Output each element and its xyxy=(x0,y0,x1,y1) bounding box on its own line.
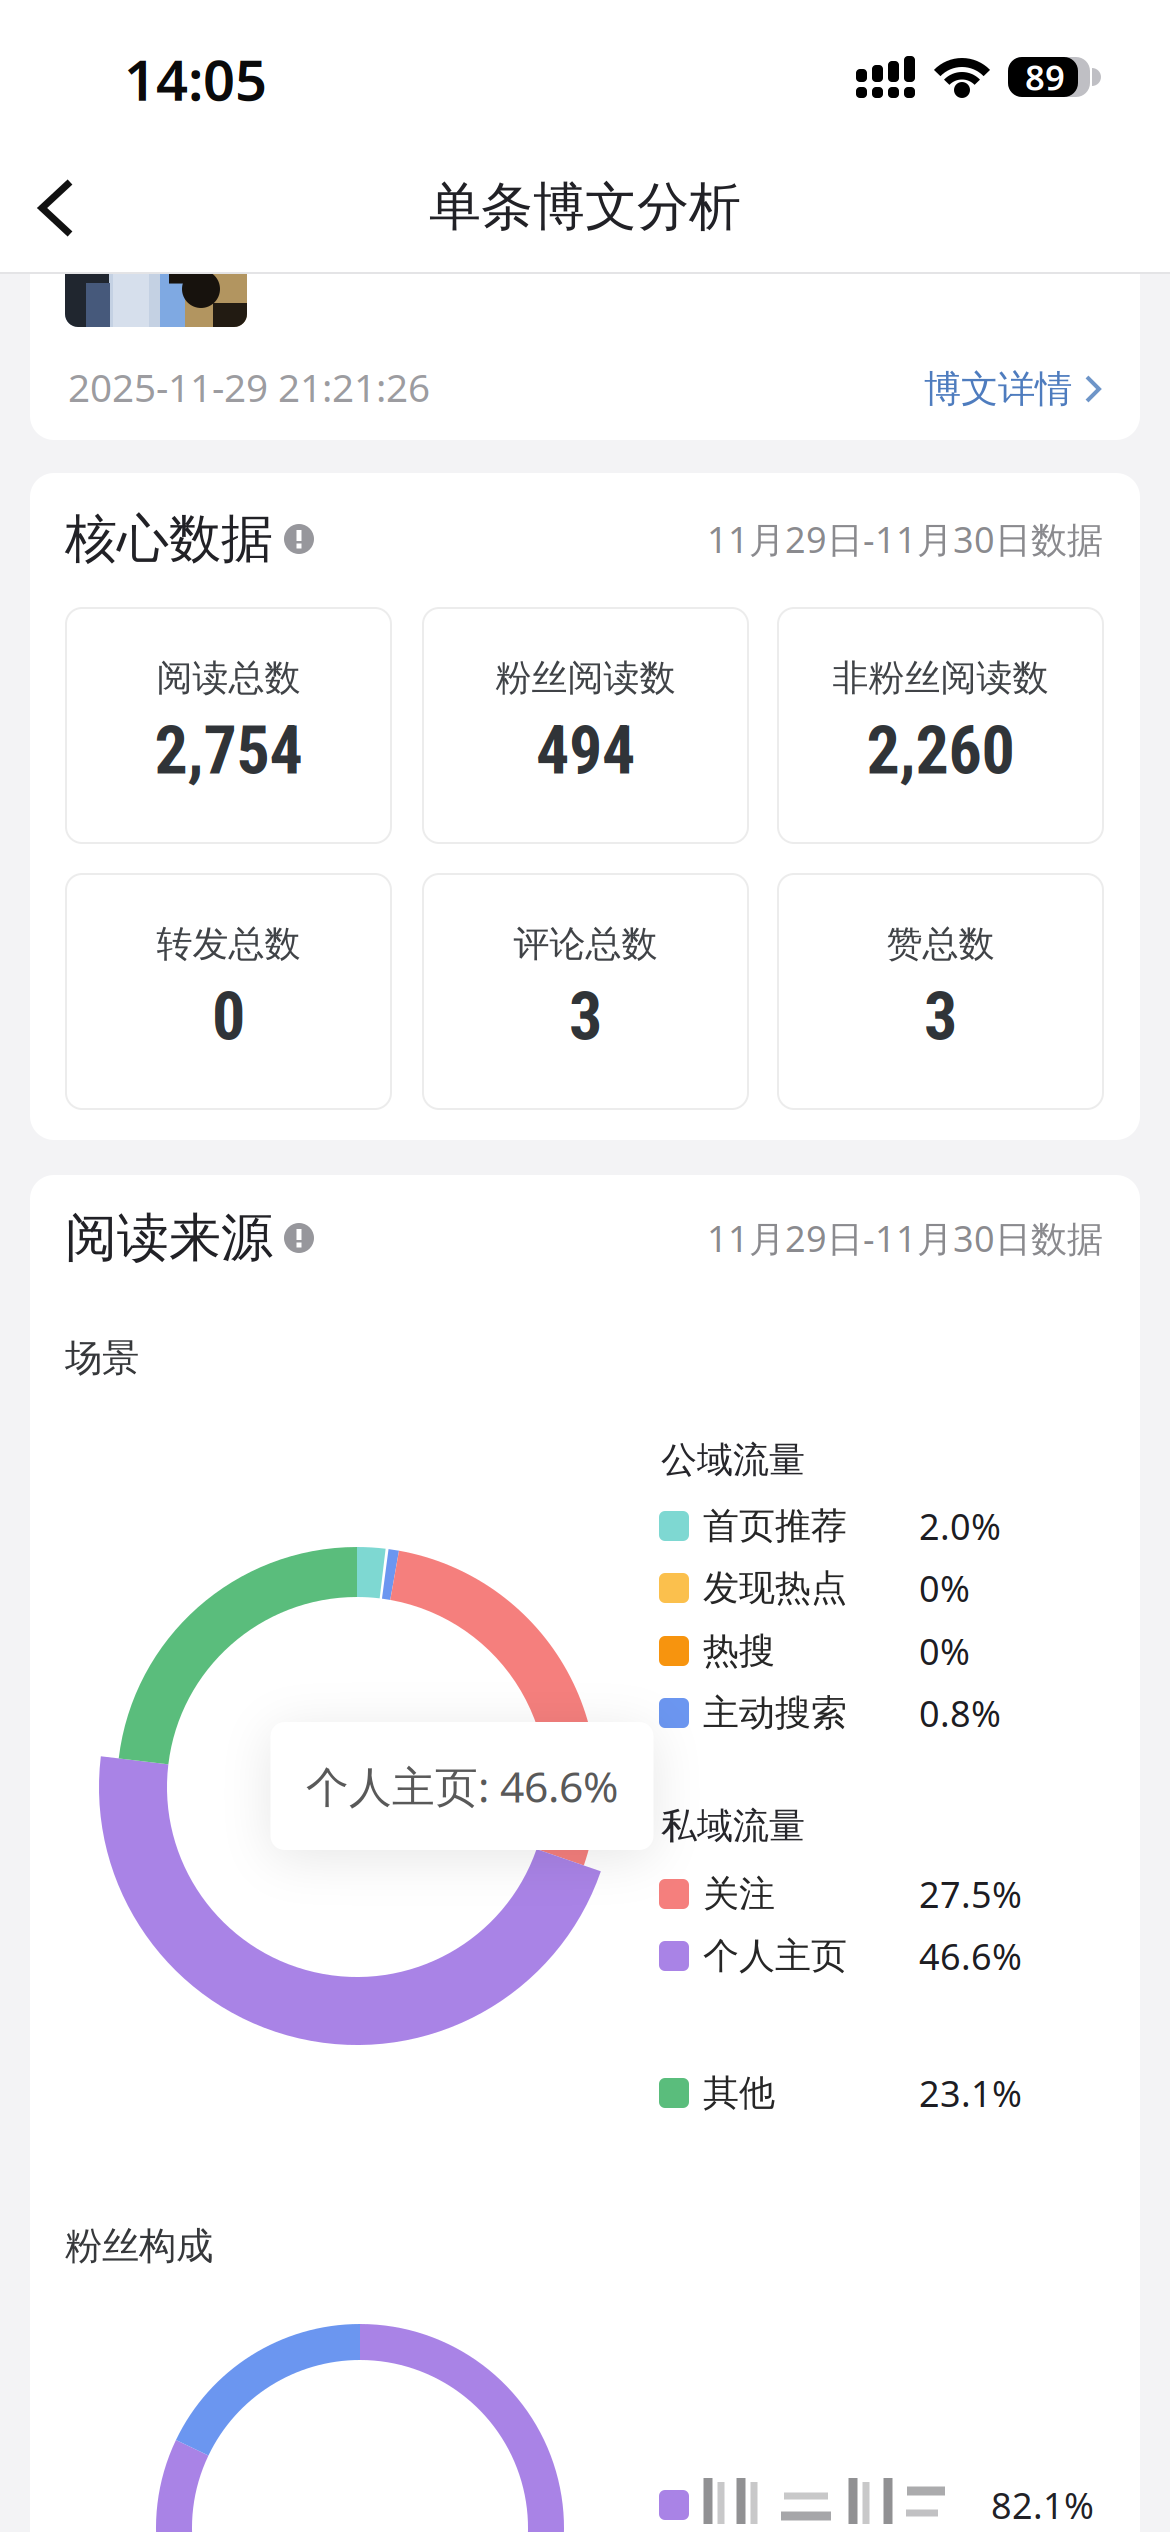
staticText: 2,754 xyxy=(154,712,302,790)
staticText: 0.8% xyxy=(919,1689,1001,1737)
staticText: 粉丝构成 xyxy=(65,2223,213,2269)
staticText: 个人主页: 46.6% xyxy=(306,1758,618,1814)
staticText: 0 xyxy=(212,978,245,1056)
staticText: 公域流量 xyxy=(661,1438,805,1482)
staticText: 非粉丝阅读数 xyxy=(832,656,1048,700)
staticText: 发现热点 xyxy=(703,1566,847,1610)
staticText: 阅读来源 xyxy=(65,1206,273,1270)
button[interactable]: 博文详情 xyxy=(924,366,1102,412)
staticText: 2025-11-29 21:21:26 xyxy=(68,361,430,413)
staticText: 89 xyxy=(1025,54,1065,100)
button[interactable]: Info xyxy=(284,1223,314,1253)
staticText: 关注 xyxy=(703,1872,775,1916)
staticText: 0% xyxy=(919,1627,970,1675)
staticText: 2.0% xyxy=(919,1502,1001,1550)
staticText: 0% xyxy=(919,1564,970,1612)
staticText: 2,260 xyxy=(866,712,1014,790)
staticText: 3 xyxy=(924,978,957,1056)
button[interactable]: Back xyxy=(36,178,80,238)
staticText: 27.5% xyxy=(919,1870,1022,1918)
staticText: 热搜 xyxy=(703,1629,775,1673)
staticText: 首页推荐 xyxy=(703,1504,847,1548)
staticText: 主动搜索 xyxy=(703,1691,847,1735)
staticText: 私域流量 xyxy=(661,1804,805,1848)
staticText: 核心数据 xyxy=(65,507,273,571)
button[interactable]: Info xyxy=(284,524,314,554)
staticText: 阅读总数 xyxy=(156,656,300,700)
staticText: 单条博文分析 xyxy=(429,175,741,239)
staticText: 46.6% xyxy=(919,1932,1022,1980)
staticText: 82.1% xyxy=(991,2481,1094,2529)
staticText: 个人主页 xyxy=(703,1934,847,1978)
staticText: 赞总数 xyxy=(886,922,994,966)
staticText: 494 xyxy=(536,712,635,790)
staticText: 其他 xyxy=(703,2071,775,2115)
staticText: 转发总数 xyxy=(156,922,300,966)
staticText: 评论总数 xyxy=(513,922,657,966)
staticText: 博文详情 xyxy=(924,366,1072,412)
staticText: 3 xyxy=(569,978,602,1056)
staticText: 11月29日-11月30日数据 xyxy=(707,1214,1103,1262)
staticText: 14:05 xyxy=(124,42,267,116)
staticText: 粉丝阅读数 xyxy=(495,656,675,700)
staticText: 11月29日-11月30日数据 xyxy=(707,515,1103,563)
staticText: 场景 xyxy=(65,1335,139,1381)
staticText: 23.1% xyxy=(919,2069,1022,2117)
